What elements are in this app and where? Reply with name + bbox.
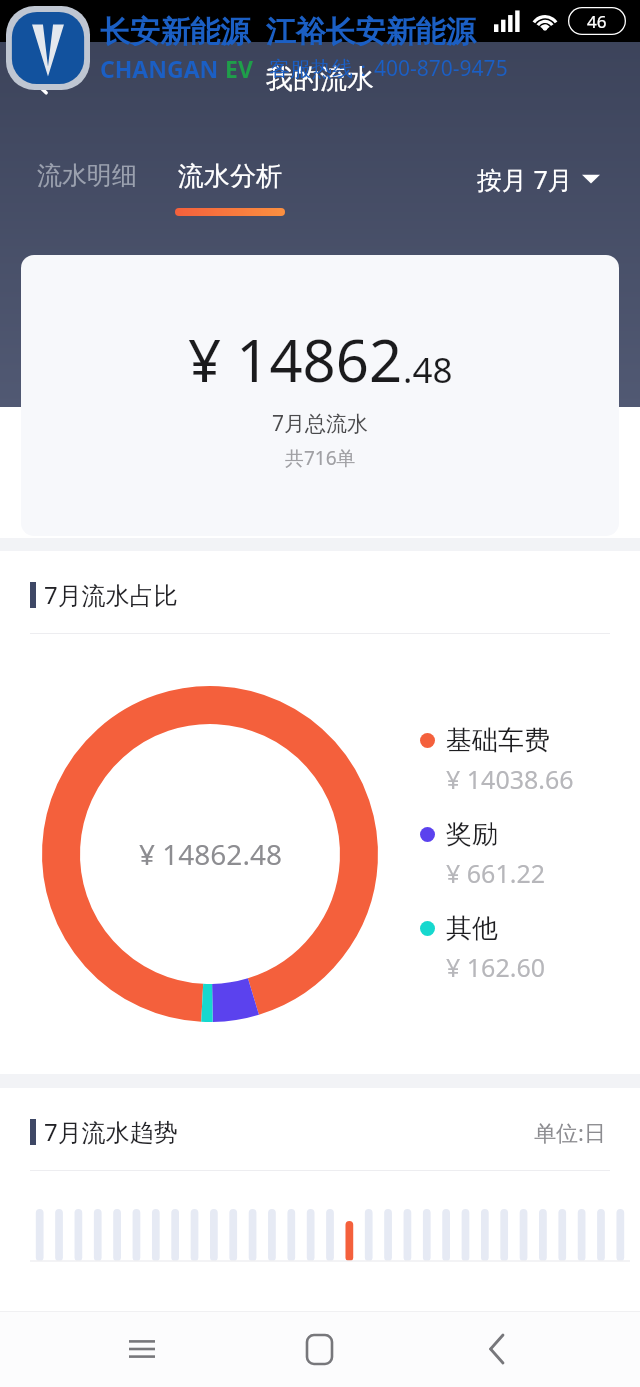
button[interactable]: Back — [14, 56, 70, 112]
button[interactable]: 基础车费 — [420, 724, 574, 796]
staticText: 流水分析 — [178, 160, 282, 193]
staticText: EV — [225, 53, 253, 84]
button[interactable]: 其他 — [420, 912, 546, 984]
staticText: .48 — [403, 346, 453, 394]
staticText: ¥ 162.60 — [446, 950, 546, 984]
staticText: 我的流水 — [266, 62, 374, 96]
button[interactable]: 按月 7月 — [477, 162, 600, 196]
staticText: 流水明细 — [37, 160, 137, 191]
staticText: 9:36 — [14, 8, 52, 34]
staticText: ¥ 14038.66 — [446, 762, 574, 796]
staticText: 7月流水趋势 — [44, 1115, 178, 1148]
button[interactable]: 流水分析 — [175, 160, 285, 216]
staticText: CHANGAN — [100, 53, 225, 84]
staticText: 7月总流水 — [272, 409, 369, 438]
button[interactable]: ¥ 14862 — [21, 255, 619, 536]
staticText: ¥ 14862 — [188, 320, 403, 399]
button[interactable]: Recent apps — [107, 1314, 177, 1384]
button[interactable]: 流水明细 — [37, 160, 137, 191]
staticText: ¥ 661.22 — [446, 856, 546, 890]
staticText: 基础车费 — [446, 724, 550, 757]
staticText: 按月 7月 — [477, 162, 573, 196]
staticText: 奖励 — [446, 818, 498, 851]
staticText: 客服热线：400-870-9475 — [269, 54, 508, 83]
staticText: 7月流水占比 — [44, 578, 178, 611]
staticText: 单位:日 — [534, 1117, 606, 1147]
staticText: 其他 — [446, 912, 498, 945]
staticText: 长安新能源 江裕长安新能源 — [100, 10, 476, 51]
button[interactable]: 奖励 — [420, 818, 546, 890]
staticText: ¥ 14862.48 — [139, 835, 282, 873]
staticText: 共716单 — [285, 445, 356, 471]
button[interactable]: Back — [462, 1314, 532, 1384]
button[interactable]: Home — [284, 1314, 354, 1384]
staticText: 46 — [587, 10, 607, 33]
